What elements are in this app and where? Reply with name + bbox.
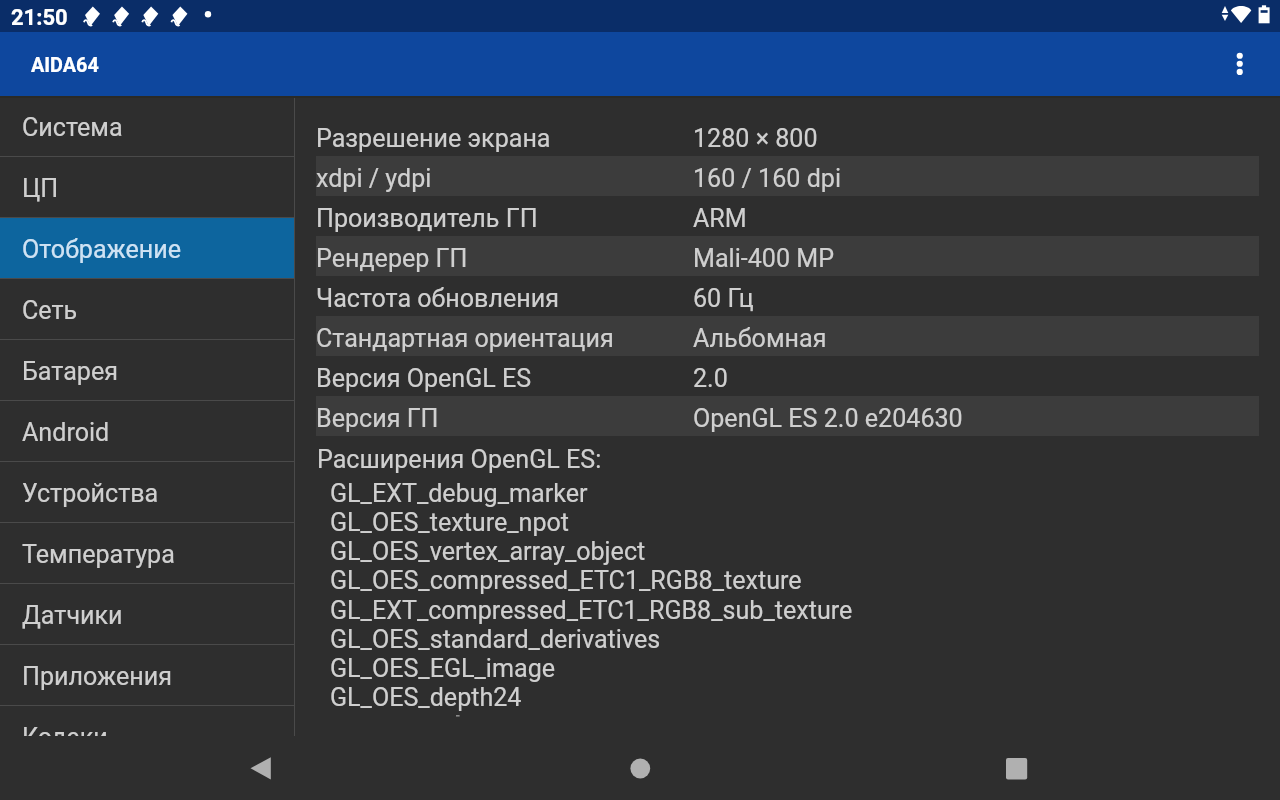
- staticText: GL_OES_texture_npot: [330, 508, 570, 537]
- staticText: ЦП: [22, 174, 59, 203]
- staticText: Рендерер ГП: [316, 244, 468, 273]
- staticText: 60 Гц: [693, 284, 754, 313]
- staticText: GL_OES_depth24: [330, 683, 522, 712]
- button[interactable]: Частота обновления: [316, 276, 1259, 316]
- staticText: xdpi / ydpi: [316, 164, 432, 193]
- button[interactable]: Версия ГП: [316, 396, 1259, 436]
- staticText: Приложения: [22, 662, 173, 691]
- button[interactable]: Температура: [0, 523, 295, 584]
- button[interactable]: Приложения: [0, 645, 295, 706]
- staticText: Mali-400 MP: [693, 244, 834, 273]
- button[interactable]: Устройства: [0, 462, 295, 523]
- staticText: GL_OES_compressed_ETC1_RGB8_texture: [330, 566, 802, 595]
- button[interactable]: Разрешение экрана: [316, 116, 1259, 156]
- staticText: Версия OpenGL ES: [316, 364, 532, 393]
- staticText: ARM: [693, 204, 747, 233]
- staticText: GL_OES_EGL_image: [330, 654, 556, 683]
- staticText: GL_EXT_compressed_ETC1_RGB8_sub_texture: [330, 596, 853, 625]
- staticText: GL_OES_standard_derivatives: [330, 625, 661, 654]
- button[interactable]: Система: [0, 96, 295, 157]
- button[interactable]: Home: [609, 737, 671, 799]
- staticText: AIDA64: [31, 54, 99, 77]
- button[interactable]: Сеть: [0, 279, 295, 340]
- staticText: Система: [22, 113, 123, 142]
- staticText: 1280 × 800: [693, 124, 818, 153]
- staticText: 21:50: [11, 5, 68, 31]
- staticText: Устройства: [22, 479, 159, 508]
- button[interactable]: Отображение: [0, 218, 295, 279]
- staticText: Альбомная: [693, 324, 827, 353]
- button[interactable]: More options: [1212, 32, 1268, 96]
- staticText: Android: [22, 418, 110, 447]
- button[interactable]: ЦП: [0, 157, 295, 218]
- staticText: Стандартная ориентация: [316, 324, 614, 353]
- staticText: Батарея: [22, 357, 118, 386]
- staticText: GL_OES_vertex_array_object: [330, 537, 646, 566]
- button[interactable]: Стандартная ориентация: [316, 316, 1259, 356]
- button[interactable]: Датчики: [0, 584, 295, 645]
- button[interactable]: Android: [0, 401, 295, 462]
- button[interactable]: Кодеки: [0, 706, 295, 767]
- staticText: Версия ГП: [316, 404, 439, 433]
- button[interactable]: Батарея: [0, 340, 295, 401]
- button[interactable]: Рендерер ГП: [316, 236, 1259, 276]
- staticText: Производитель ГП: [316, 204, 538, 233]
- staticText: OpenGL ES 2.0 e204630: [693, 404, 963, 433]
- staticText: Датчики: [22, 601, 123, 630]
- staticText: Температура: [22, 540, 175, 569]
- button[interactable]: Версия OpenGL ES: [316, 356, 1259, 396]
- button[interactable]: Recent apps: [985, 736, 1047, 800]
- staticText: Расширения OpenGL ES:: [317, 445, 602, 474]
- staticText: Кодеки: [22, 723, 108, 752]
- staticText: 2.0: [693, 364, 728, 393]
- staticText: GL_EXT_debug_marker: [330, 479, 588, 508]
- staticText: Сеть: [22, 296, 78, 325]
- button[interactable]: Back: [230, 736, 292, 800]
- staticText: Частота обновления: [316, 284, 559, 313]
- staticText: 160 / 160 dpi: [693, 164, 841, 193]
- staticText: Разрешение экрана: [316, 124, 551, 153]
- staticText: Отображение: [22, 235, 182, 264]
- button[interactable]: Производитель ГП: [316, 196, 1259, 236]
- button[interactable]: xdpi / ydpi: [316, 156, 1259, 196]
